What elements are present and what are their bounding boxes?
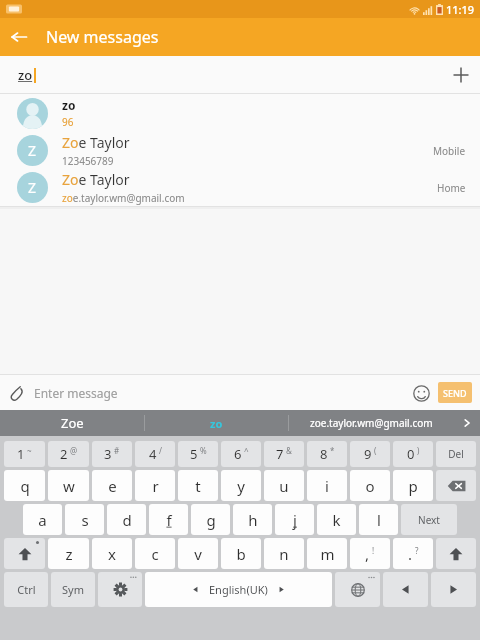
staticText: ) [417,445,420,456]
button[interactable]: v [178,538,218,569]
staticText: t [195,476,201,496]
button[interactable]: , [350,538,390,569]
staticText: q [20,476,30,496]
staticText: & [286,445,292,456]
button[interactable]: Z [0,169,480,206]
button[interactable]: Next [401,504,457,535]
staticText: zoe.taylor.wm@gmail.com [62,191,185,205]
staticText: * [330,445,335,456]
button[interactable]: a [23,504,62,535]
button[interactable]: x [92,538,132,569]
staticText: / [159,445,162,456]
button[interactable]: l [359,504,398,535]
staticText: New messages [46,26,159,48]
staticText: s [81,510,89,530]
button[interactable]: English(UK) [145,572,332,607]
staticText: 8 [320,445,328,463]
button[interactable]: shift [4,538,45,569]
staticText: 11:19 [446,2,475,17]
button[interactable]: m [307,538,347,569]
button[interactable]: z [48,538,89,569]
button[interactable]: zo [0,94,480,132]
button[interactable]: h [233,504,272,535]
staticText: a [38,510,47,530]
staticText: ! [372,545,375,556]
button[interactable]: r [135,470,175,501]
button[interactable]: 9 [350,441,390,467]
button[interactable]: Emoji [406,378,436,408]
button[interactable]: q [4,470,45,501]
button[interactable]: Add recipient [442,56,480,94]
button[interactable]: backspace [436,470,476,501]
button[interactable]: d [107,504,146,535]
button[interactable]: zo [145,410,288,436]
button[interactable]: 2 [48,441,89,467]
staticText: o [365,476,375,496]
button[interactable]: left [383,572,428,607]
staticText: English(UK) [209,582,268,597]
button[interactable]: 7 [264,441,304,467]
button[interactable]: gear [98,572,142,607]
button[interactable]: 3 [92,441,132,467]
button[interactable]: Z [0,132,480,169]
staticText: f [166,510,172,530]
button[interactable]: right [431,572,476,607]
button[interactable]: Ctrl [4,572,48,607]
button[interactable]: s [65,504,104,535]
staticText: % [200,445,207,456]
staticText: Home [437,181,466,195]
button[interactable]: 8 [307,441,347,467]
button[interactable]: o [350,470,390,501]
staticText: y [237,476,245,496]
button[interactable]: n [264,538,304,569]
staticText: b [236,544,246,564]
staticText: zo [62,97,76,113]
button[interactable]: . [393,538,433,569]
button[interactable]: 4 [135,441,175,467]
staticText: Zoe Taylor [62,170,130,189]
button[interactable]: j [275,504,314,535]
button[interactable]: t [178,470,218,501]
staticText: 3 [104,445,112,463]
staticText: w [63,476,75,496]
staticText: n [279,544,289,564]
button[interactable]: More suggestions [454,410,480,436]
button[interactable]: SEND [438,382,472,403]
button[interactable]: up [436,538,476,569]
staticText: Enter message [34,385,118,401]
button[interactable]: p [393,470,433,501]
staticText: x [108,544,116,564]
staticText: Zoe [61,414,84,432]
staticText: i [325,476,329,496]
button[interactable]: f [149,504,188,535]
button[interactable]: 5 [178,441,218,467]
button[interactable]: b [221,538,261,569]
staticText: 0 [407,445,415,463]
staticText: 1 [17,445,25,463]
staticText: 2 [60,445,68,463]
button[interactable]: k [317,504,356,535]
button[interactable]: i [307,470,347,501]
button[interactable]: Sym [51,572,95,607]
button[interactable]: u [264,470,304,501]
button[interactable]: globe [335,572,380,607]
button[interactable]: Back [0,18,38,56]
button[interactable]: c [135,538,175,569]
button[interactable]: 1 [4,441,45,467]
button[interactable]: Del [436,441,476,467]
button[interactable]: 0 [393,441,433,467]
staticText: e [108,476,117,496]
button[interactable]: Zoe [0,410,144,436]
button[interactable]: w [48,470,89,501]
button[interactable]: e [92,470,132,501]
button[interactable]: y [221,470,261,501]
staticText: Next [418,513,440,527]
staticText: v [194,544,202,564]
button[interactable]: 6 [221,441,261,467]
staticText: ^ [244,445,249,456]
button[interactable]: g [191,504,230,535]
button[interactable]: zoe.taylor.wm@gmail.com [289,410,454,436]
staticText: 7 [276,445,284,463]
staticText: # [114,445,120,456]
button[interactable]: Attach [0,376,34,410]
